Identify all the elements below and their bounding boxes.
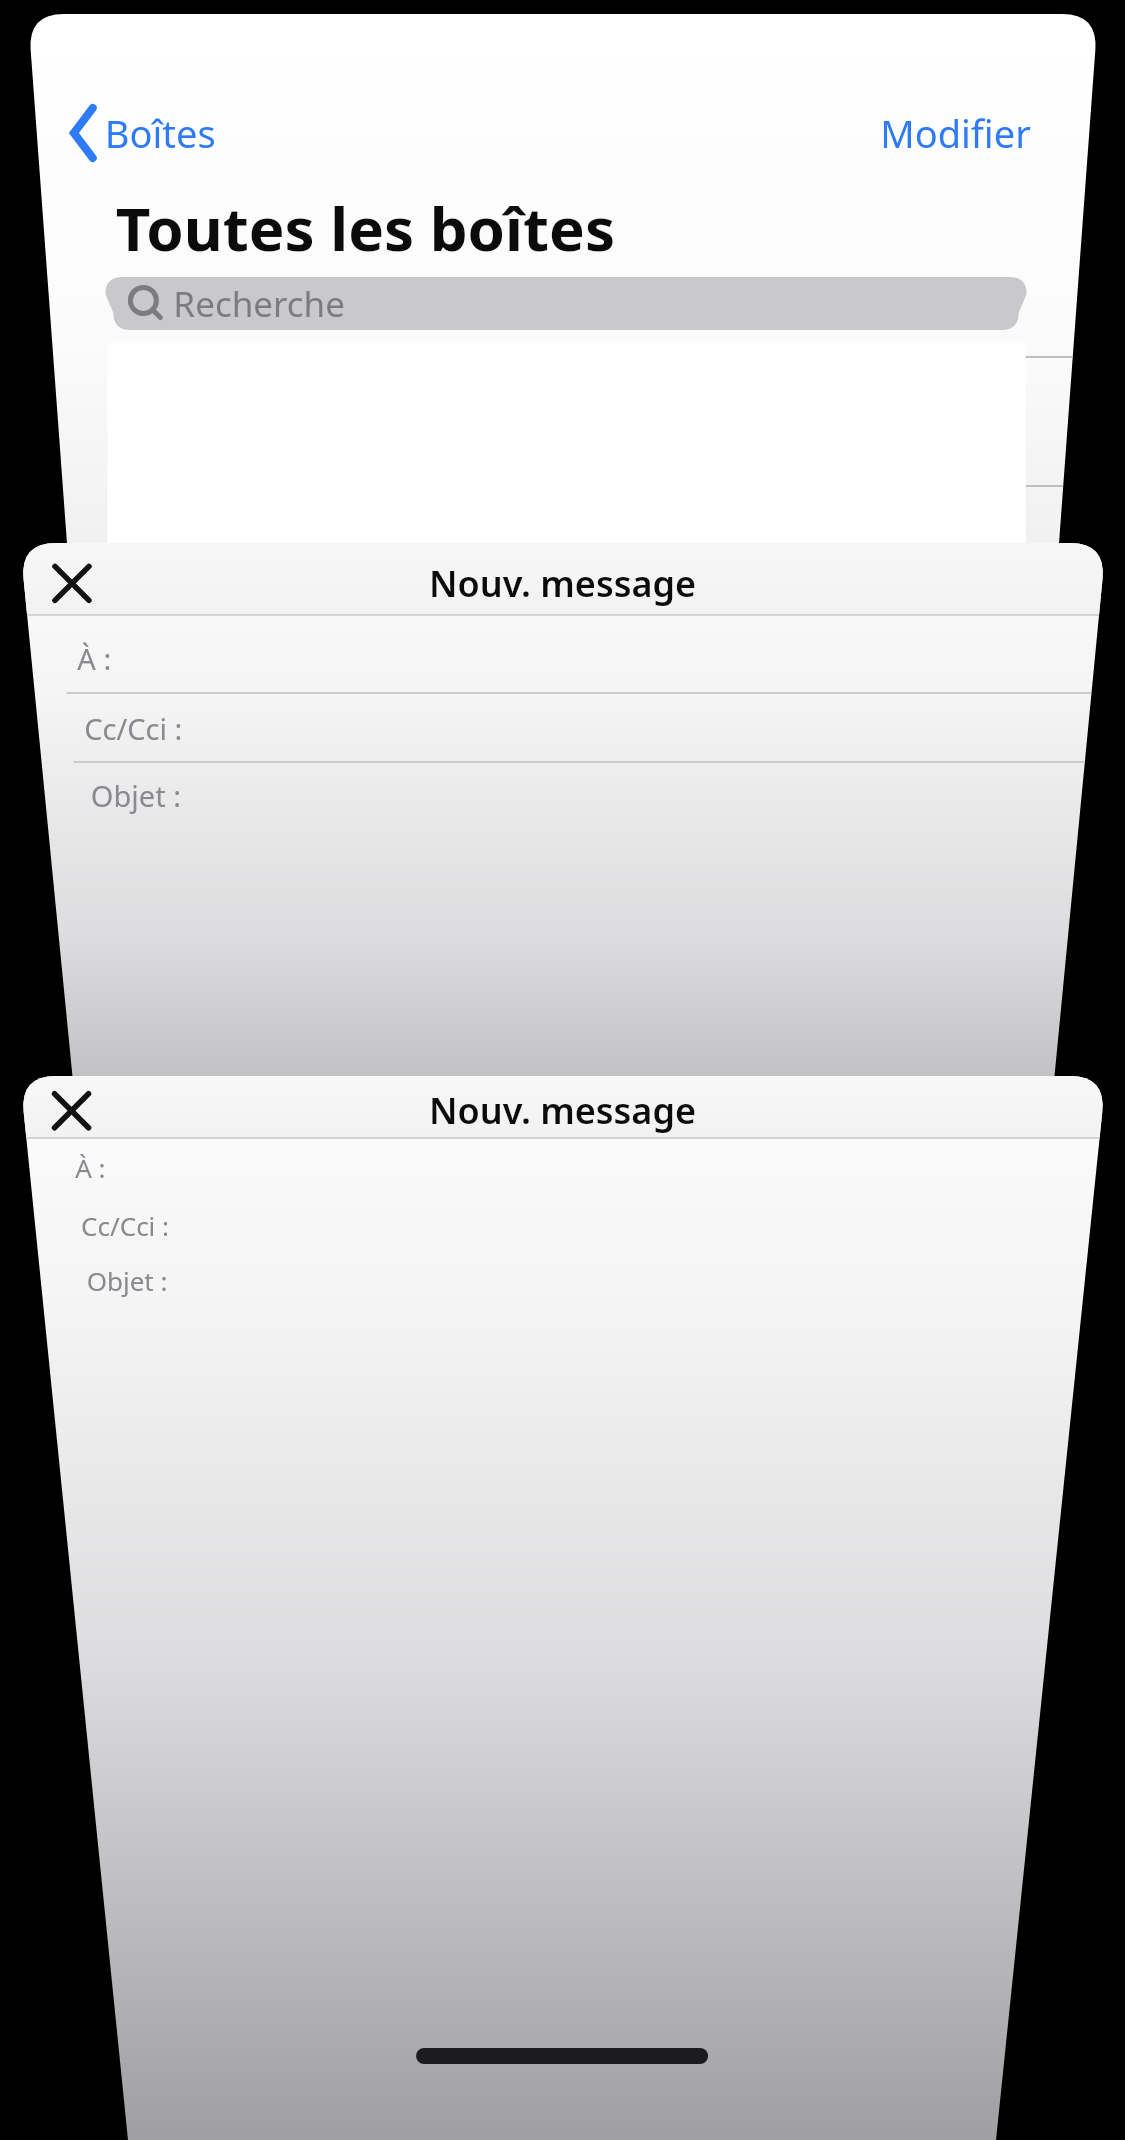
button[interactable]: App switcher cards [0, 0, 1125, 2140]
